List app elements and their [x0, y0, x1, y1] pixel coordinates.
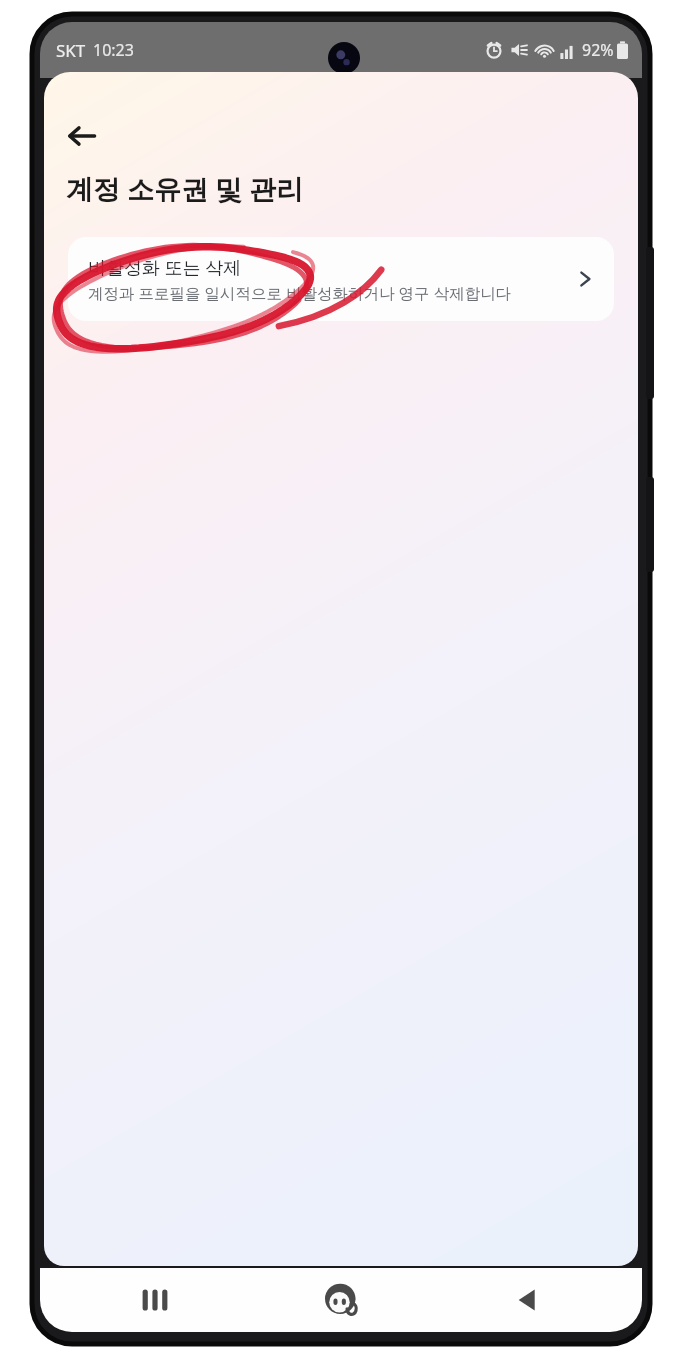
- staticText: 계정과 프로필을 일시적으로 비활성화하거나 영구 삭제합니다: [88, 282, 512, 303]
- button[interactable]: 비활성화 또는 삭제: [68, 237, 614, 321]
- staticText: 계정 소유권 및 관리: [66, 170, 304, 207]
- staticText: 10:23: [93, 39, 134, 61]
- button[interactable]: Back: [54, 108, 110, 164]
- staticText: SKT: [56, 39, 86, 62]
- staticText: 비활성화 또는 삭제: [88, 255, 242, 280]
- staticText: 92%: [582, 39, 614, 61]
- button[interactable]: Recent apps: [62, 1268, 248, 1332]
- button[interactable]: Back: [434, 1268, 620, 1332]
- button[interactable]: Home: [248, 1268, 434, 1332]
